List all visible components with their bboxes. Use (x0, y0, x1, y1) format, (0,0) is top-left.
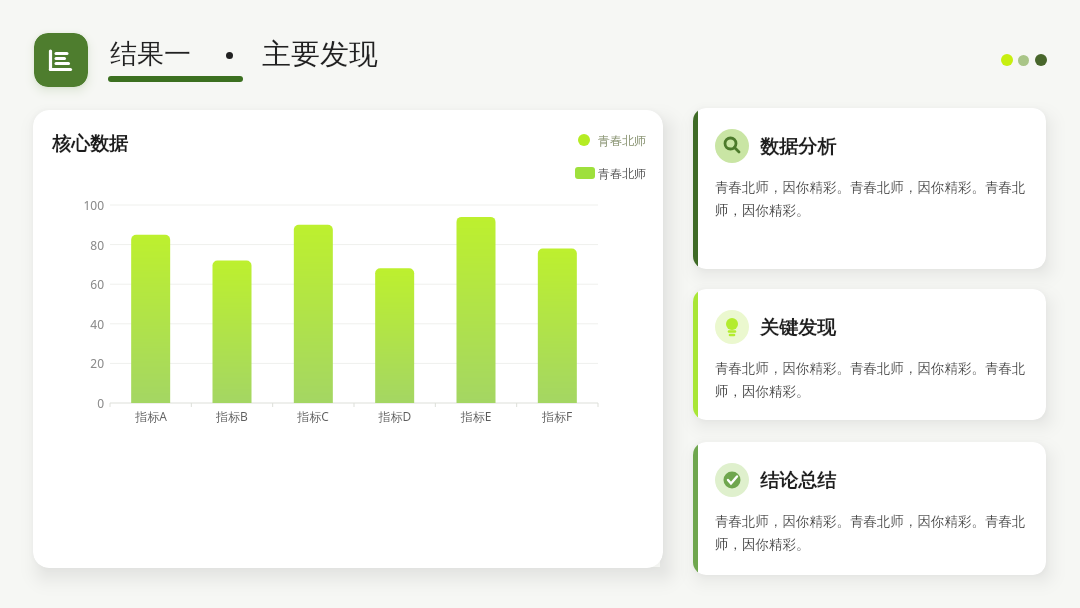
button[interactable]: 数据分析 (693, 108, 1046, 269)
staticText: 60 (72, 276, 104, 292)
button[interactable]: 关键发现 (693, 289, 1046, 420)
staticText: 青春北师，因你精彩。青春北师，因你精彩。青春北 (715, 513, 1026, 530)
staticText: 数据分析 (760, 135, 836, 159)
staticText: 指标A (121, 408, 181, 424)
staticText: 结论总结 (760, 469, 836, 493)
staticText: 80 (72, 237, 104, 253)
staticText: 指标D (365, 408, 425, 424)
button[interactable]: 结论总结 (693, 442, 1046, 575)
staticText: 主要发现 (262, 36, 378, 73)
staticText: 师，因你精彩。 (715, 383, 810, 400)
staticText: 师，因你精彩。 (715, 536, 810, 553)
staticText: 指标C (283, 408, 343, 424)
staticText: 40 (72, 316, 104, 332)
staticText: 青春北师，因你精彩。青春北师，因你精彩。青春北 (715, 179, 1026, 196)
staticText: 100 (72, 197, 104, 213)
staticText: 20 (72, 355, 104, 371)
staticText: 指标B (202, 408, 262, 424)
staticText: 指标F (527, 408, 587, 424)
staticText: 青春北师，因你精彩。青春北师，因你精彩。青春北 (715, 360, 1026, 377)
staticText: 结果一 (110, 37, 191, 71)
staticText: 核心数据 (52, 132, 128, 156)
staticText: 指标E (446, 408, 506, 424)
staticText: 关键发现 (760, 316, 836, 340)
staticText: 0 (72, 395, 104, 411)
staticText: 青春北师 (598, 166, 646, 181)
button[interactable] (34, 33, 88, 87)
staticText: 青春北师 (598, 133, 646, 148)
staticText: 师，因你精彩。 (715, 202, 810, 219)
